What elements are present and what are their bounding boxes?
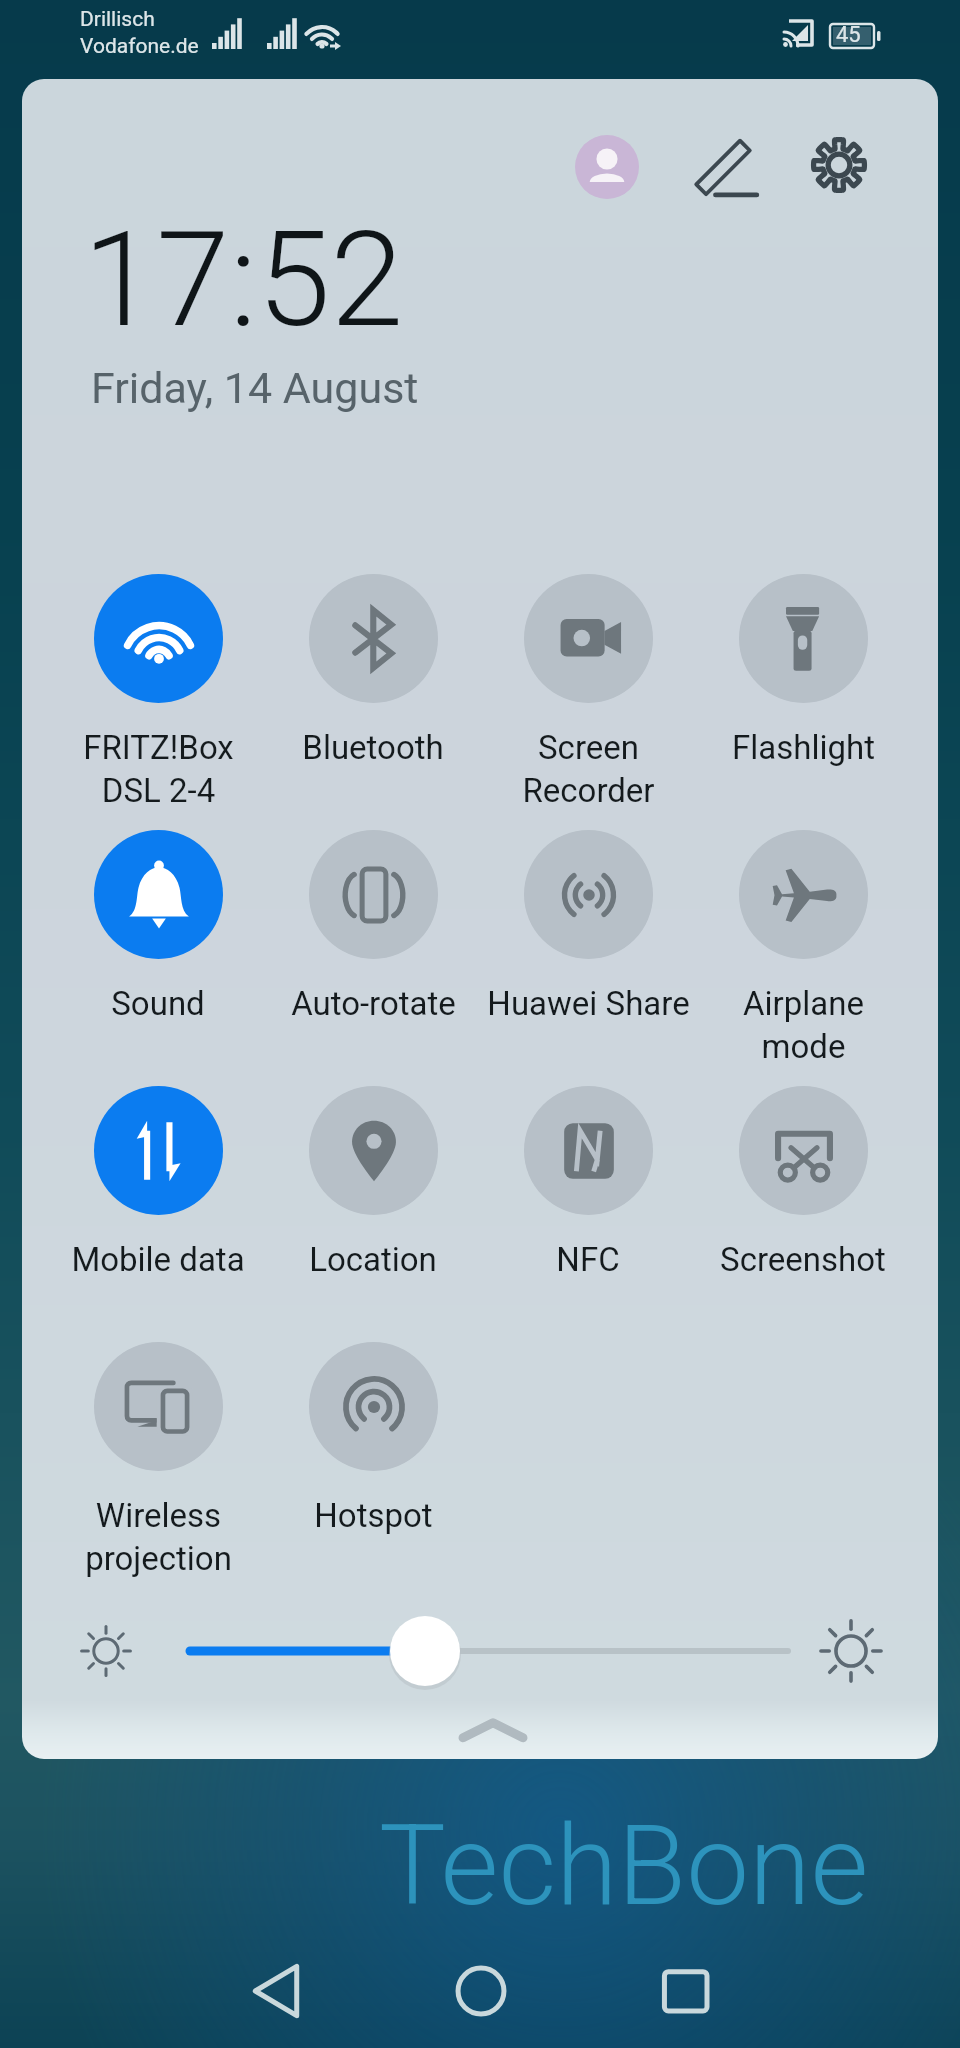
button[interactable]: Huawei Share [481, 830, 695, 1023]
staticText: Huawei Share [487, 984, 690, 1023]
button[interactable]: Auto-rotate [266, 830, 480, 1023]
staticText: Friday, 14 August [91, 363, 419, 413]
button[interactable]: Screen Recorder [481, 574, 695, 810]
staticText: Bluetooth [302, 728, 444, 767]
button[interactable]: Account [543, 103, 671, 231]
staticText: 17:52 [83, 203, 404, 358]
staticText: 45 [836, 22, 861, 48]
staticText: FRITZ!Box DSL 2-4 [83, 728, 234, 810]
button[interactable]: Sound [51, 830, 265, 1023]
staticText: Screenshot [720, 1240, 886, 1279]
button[interactable]: Location [266, 1086, 480, 1279]
button[interactable]: Settings [775, 101, 903, 229]
staticText: Wireless projection [85, 1496, 232, 1578]
button[interactable]: Flashlight [696, 574, 910, 767]
button[interactable]: Back [173, 1934, 378, 2048]
button[interactable]: Airplane mode [696, 830, 910, 1066]
button[interactable]: FRITZ!Box DSL 2-4 [51, 574, 265, 810]
staticText: Mobile data [71, 1240, 245, 1279]
staticText: TechBone [379, 1800, 869, 1931]
button[interactable]: Mobile data [51, 1086, 265, 1279]
staticText: Location [309, 1240, 437, 1279]
button[interactable]: Edit [662, 104, 790, 232]
button[interactable]: Bluetooth [266, 574, 480, 767]
staticText: Screen Recorder [522, 728, 655, 810]
staticText: Flashlight [732, 728, 875, 767]
button[interactable]: Wireless projection [51, 1342, 265, 1578]
staticText: Auto-rotate [291, 984, 456, 1023]
staticText: Hotspot [314, 1496, 433, 1535]
button[interactable]: Hotspot [266, 1342, 480, 1535]
staticText: Airplane mode [743, 984, 864, 1066]
button[interactable]: Home [378, 1934, 583, 2048]
staticText: Sound [111, 984, 205, 1023]
staticText: Drillisch [80, 7, 155, 32]
button[interactable]: Screenshot [696, 1086, 910, 1279]
button[interactable]: Recents [583, 1934, 788, 2048]
staticText: NFC [556, 1240, 620, 1279]
button[interactable]: NFC [481, 1086, 695, 1279]
staticText: Vodafone.de [80, 34, 199, 59]
